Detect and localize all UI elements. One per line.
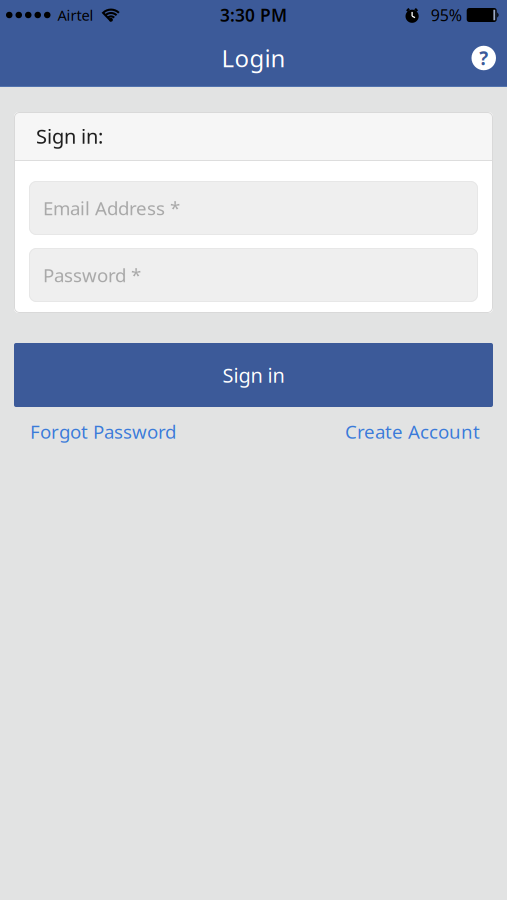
button[interactable]: Forgot Password [30, 419, 176, 444]
staticText: Airtel [57, 5, 93, 25]
staticText: 3:30 PM [220, 3, 287, 26]
textField[interactable]: Email Address * [29, 181, 478, 235]
button[interactable]: Sign in [14, 343, 493, 407]
secureTextField[interactable]: Password * [29, 248, 478, 302]
staticText: Email Address * [43, 196, 180, 220]
staticText: Login [221, 42, 285, 74]
staticText: Sign in [222, 362, 284, 388]
button[interactable]: Create Account [345, 419, 480, 444]
staticText: Password * [43, 263, 141, 287]
staticText: Create Account [345, 419, 480, 444]
staticText: 95% [431, 4, 462, 26]
staticText: Sign in: [36, 123, 103, 149]
button[interactable]: Help [471, 46, 496, 70]
staticText: ? [479, 46, 488, 70]
staticText: Forgot Password [30, 419, 176, 444]
